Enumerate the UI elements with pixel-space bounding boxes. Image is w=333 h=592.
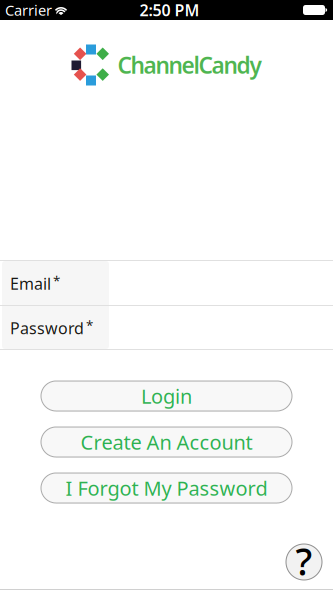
staticText: ChannelCandy [117, 50, 261, 80]
staticText: Email * [10, 272, 60, 294]
button[interactable]: Email * [0, 261, 333, 305]
button[interactable]: Help [286, 544, 322, 580]
staticText: I Forgot My Password [65, 475, 267, 501]
staticText: Password * [10, 316, 93, 339]
staticText: ? [295, 536, 312, 586]
button[interactable]: Login [41, 381, 292, 411]
button[interactable]: I Forgot My Password [41, 473, 292, 503]
staticText: Login [141, 383, 192, 409]
staticText: Create An Account [80, 429, 252, 455]
staticText: 2:50 PM [139, 0, 199, 21]
button[interactable]: Create An Account [41, 427, 292, 457]
staticText: Carrier [5, 0, 52, 20]
button[interactable]: Password * [0, 306, 333, 349]
